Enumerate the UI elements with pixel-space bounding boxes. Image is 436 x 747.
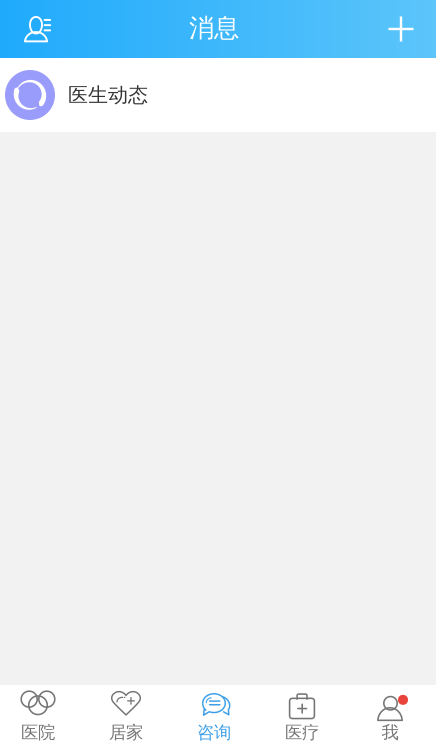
button[interactable]: 医院	[0, 683, 82, 747]
staticText: 居家	[109, 722, 143, 743]
button[interactable]: 医生动态	[0, 58, 436, 132]
button[interactable]: 医疗	[258, 683, 346, 747]
button[interactable]: 居家	[82, 683, 170, 747]
staticText: 我	[381, 722, 398, 743]
staticText: 消息	[189, 12, 239, 43]
button[interactable]: 咨询	[170, 683, 258, 747]
button[interactable]: 我	[346, 683, 434, 747]
button[interactable]: Add	[366, 4, 436, 54]
staticText: 医疗	[285, 722, 319, 743]
staticText: 咨询	[197, 722, 231, 743]
button[interactable]: Contacts	[0, 4, 72, 54]
staticText: 医生动态	[68, 83, 148, 107]
staticText: 医院	[21, 722, 55, 743]
